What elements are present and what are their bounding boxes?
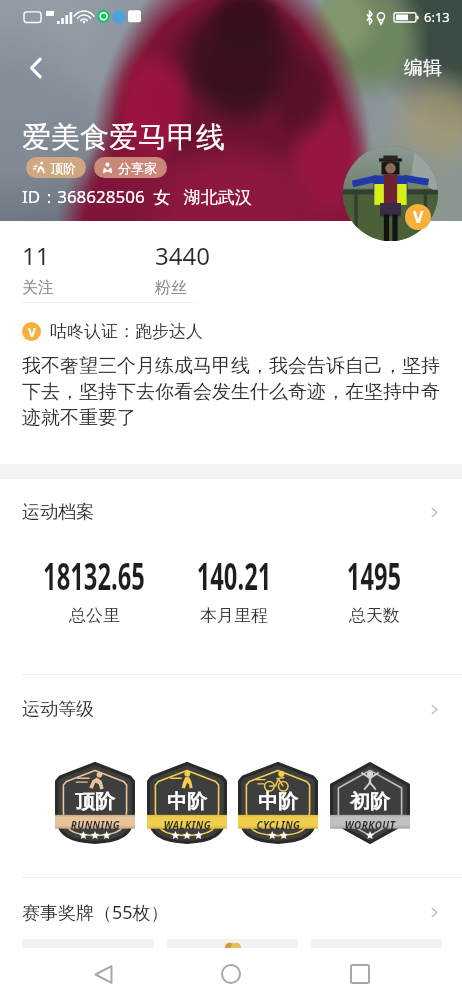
staticText: 3440 [155, 239, 210, 272]
button[interactable]: Profile photo [343, 146, 438, 241]
button[interactable]: 赛事奖牌（55枚） [0, 891, 462, 933]
staticText: 粉丝 [155, 278, 187, 298]
staticText: 顶阶 [50, 160, 76, 176]
staticText: 18132.65 [28, 549, 160, 601]
staticText: 140.21 [168, 549, 300, 601]
staticText: 总天数 [349, 605, 400, 626]
button[interactable]: 3440 [155, 239, 210, 298]
staticText: RUNNING [71, 818, 120, 831]
button[interactable]: Back [77, 948, 129, 1000]
button[interactable]: 1495 [304, 549, 444, 626]
button[interactable]: 中阶 [147, 762, 227, 844]
staticText: 1495 [308, 549, 440, 601]
staticText: 爱美食爱马甲线 [22, 119, 225, 156]
button[interactable]: 编辑 [384, 48, 462, 88]
staticText: CYCLING [256, 818, 301, 831]
staticText: 赛事奖牌（55枚） [22, 900, 169, 925]
button[interactable] [167, 939, 298, 985]
button[interactable]: 运动档案 [0, 491, 462, 533]
staticText: 总公里 [69, 605, 120, 626]
staticText: V [28, 324, 36, 340]
staticText: WORKOUT [345, 818, 396, 831]
staticText: 中阶 [258, 790, 298, 814]
staticText: 我不奢望三个月练成马甲线，我会告诉自己，坚持下去，坚持下去你看会发生什么奇迹，在… [22, 354, 445, 430]
button[interactable] [311, 939, 442, 985]
button[interactable]: 18132.65 [24, 549, 164, 626]
staticText: 顶阶 [75, 790, 115, 814]
staticText: 运动等级 [22, 698, 94, 721]
staticText: 6:13 [424, 8, 450, 26]
staticText: ID：368628506 女 湖北武汉 [22, 185, 252, 208]
button[interactable]: 140.21 [164, 549, 304, 626]
button[interactable]: 初阶 [330, 762, 410, 844]
button[interactable]: 分享家 [94, 157, 167, 178]
staticText: V [413, 206, 424, 228]
button[interactable]: Home [205, 948, 257, 1000]
staticText: 11 [22, 239, 50, 272]
staticText: 运动档案 [22, 501, 94, 524]
button[interactable]: V [22, 321, 203, 342]
staticText: 编辑 [404, 56, 442, 80]
button[interactable]: 运动等级 [0, 688, 462, 730]
staticText: WALKING [164, 818, 211, 831]
button[interactable]: 中阶 [238, 762, 318, 844]
button[interactable]: 顶阶 [55, 762, 135, 844]
button[interactable]: 11 [22, 239, 54, 298]
button[interactable] [22, 939, 154, 985]
button[interactable]: Back [12, 44, 60, 92]
staticText: 分享家 [118, 160, 157, 176]
staticText: 初阶 [350, 790, 390, 814]
button[interactable]: Recent apps [334, 948, 386, 1000]
staticText: 关注 [22, 278, 54, 298]
button[interactable]: 顶阶 [26, 157, 86, 178]
staticText: 本月里程 [200, 605, 268, 626]
staticText: 中阶 [167, 790, 207, 814]
staticText: 咕咚认证：跑步达人 [50, 321, 203, 342]
